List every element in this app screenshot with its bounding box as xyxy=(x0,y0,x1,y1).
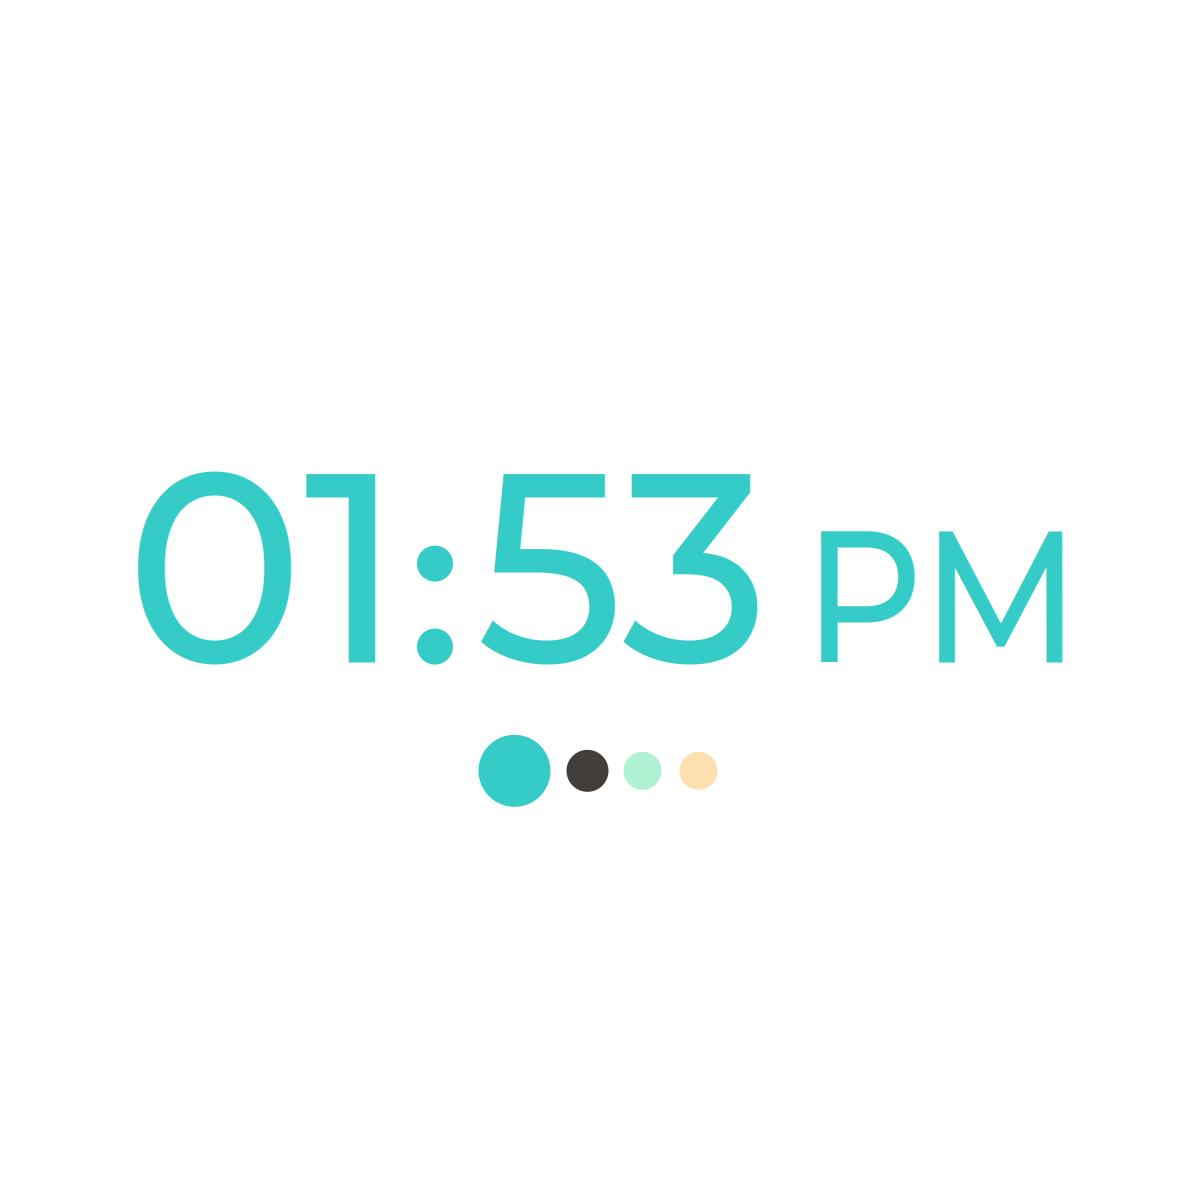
button[interactable]: Fourth page xyxy=(661,752,717,790)
staticText: 53 xyxy=(470,403,775,730)
button[interactable]: Clock page, current page xyxy=(478,735,550,807)
button[interactable]: Second page xyxy=(550,750,608,792)
button[interactable]: Third page xyxy=(608,752,661,790)
staticText: PM xyxy=(786,482,1097,709)
staticText: 01 xyxy=(125,403,403,730)
